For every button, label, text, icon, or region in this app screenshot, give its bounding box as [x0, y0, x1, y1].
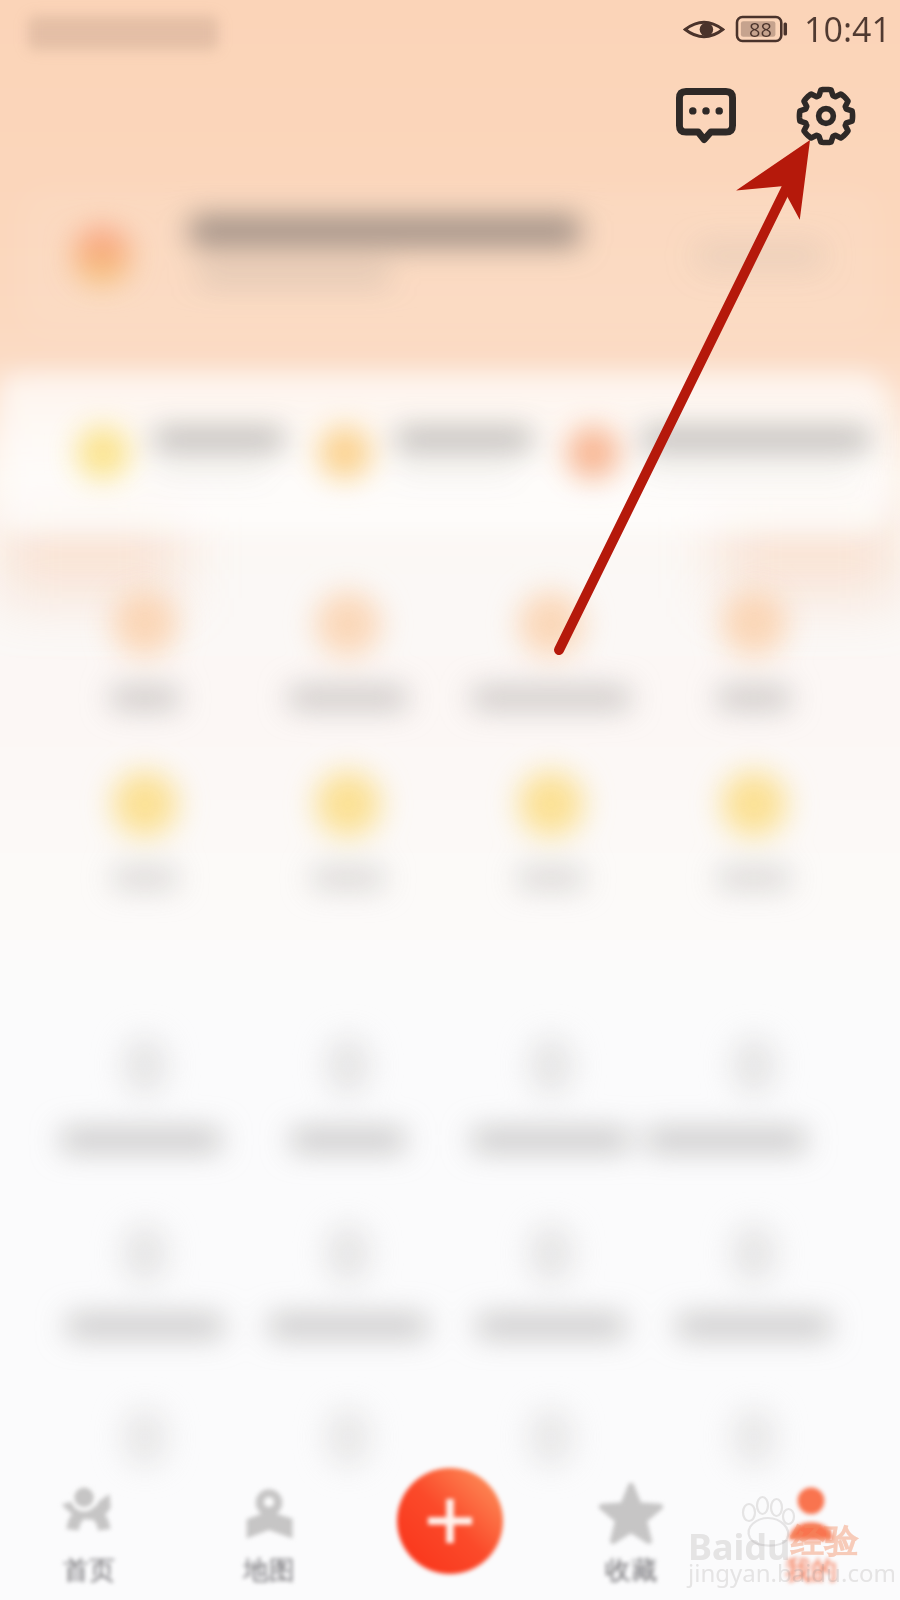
button[interactable]: Messages — [661, 72, 751, 158]
button[interactable]: 地图 — [209, 1484, 329, 1587]
staticText: 经验 — [790, 1520, 858, 1563]
button[interactable] — [471, 1216, 631, 1356]
button[interactable]: 收藏 — [571, 1484, 691, 1587]
button[interactable] — [65, 1028, 225, 1170]
staticText: 10:41 — [804, 6, 891, 52]
staticText: 地图 — [243, 1554, 295, 1587]
staticText: jingyan.baidu.com — [688, 1556, 896, 1589]
button[interactable] — [20, 188, 880, 334]
button[interactable] — [14, 372, 886, 532]
button[interactable] — [674, 583, 834, 728]
staticText: Baidu — [688, 1522, 791, 1571]
button[interactable] — [674, 763, 834, 908]
button[interactable] — [65, 1216, 225, 1356]
button[interactable] — [471, 1028, 631, 1170]
button[interactable] — [65, 763, 225, 908]
button[interactable] — [674, 1216, 834, 1356]
button[interactable] — [471, 583, 631, 728]
button[interactable] — [268, 1028, 428, 1170]
button[interactable]: 我的 — [751, 1484, 871, 1587]
button[interactable] — [268, 763, 428, 908]
button[interactable] — [268, 1216, 428, 1356]
button[interactable]: 首页 — [29, 1484, 149, 1587]
button[interactable] — [674, 1028, 834, 1170]
button[interactable] — [268, 1400, 428, 1540]
staticText: 收藏 — [605, 1554, 657, 1587]
staticText: 88 — [749, 16, 772, 43]
button[interactable] — [471, 1400, 631, 1540]
staticText: 我的 — [785, 1554, 837, 1587]
button[interactable] — [471, 763, 631, 908]
button[interactable]: Settings — [782, 72, 870, 160]
button[interactable] — [65, 1400, 225, 1540]
button[interactable] — [268, 583, 428, 728]
button[interactable] — [674, 1400, 834, 1540]
staticText: 首页 — [63, 1554, 115, 1587]
button[interactable]: Add — [397, 1468, 503, 1574]
button[interactable] — [65, 583, 225, 728]
